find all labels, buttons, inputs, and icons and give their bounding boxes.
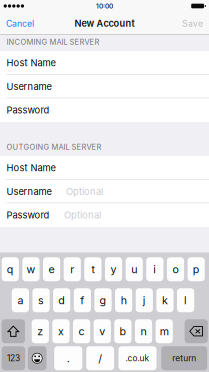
staticText: o <box>172 263 178 276</box>
staticText: g <box>99 294 106 307</box>
button[interactable]: x <box>52 319 69 343</box>
button[interactable]: Save <box>182 12 209 35</box>
button[interactable]: q <box>2 257 19 281</box>
button[interactable]: f <box>74 288 91 312</box>
staticText: a <box>17 294 23 307</box>
staticText: Password <box>6 209 49 221</box>
staticText: Optional <box>66 186 103 197</box>
button[interactable]: Host Name <box>0 51 209 75</box>
staticText: s <box>38 294 44 307</box>
button[interactable]: 123 <box>2 346 25 370</box>
button[interactable]: Delete <box>185 319 208 343</box>
button[interactable]: t <box>84 257 101 281</box>
button[interactable]: p <box>188 257 205 281</box>
button[interactable]: o <box>167 257 184 281</box>
staticText: u <box>131 263 137 276</box>
staticText: . <box>67 352 70 365</box>
staticText: OUTGOING MAIL SERVER <box>6 142 101 151</box>
button[interactable]: l <box>177 288 194 312</box>
button[interactable]: Shift <box>2 319 25 343</box>
button[interactable]: b <box>114 319 131 343</box>
staticText: q <box>7 263 14 276</box>
button[interactable]: g <box>94 288 112 312</box>
staticText: Host Name <box>6 57 55 68</box>
staticText: k <box>162 294 168 307</box>
staticText: Save <box>182 18 203 29</box>
staticText: 123 <box>7 353 20 363</box>
staticText: v <box>99 325 105 338</box>
button[interactable]: k <box>156 288 174 312</box>
staticText: / <box>98 352 102 365</box>
button[interactable]: w <box>22 257 39 281</box>
button[interactable]: Password <box>0 98 209 122</box>
button[interactable]: v <box>94 319 111 343</box>
button[interactable]: / <box>86 346 114 370</box>
button[interactable]: m <box>156 319 173 343</box>
button[interactable]: r <box>64 257 81 281</box>
button[interactable]: Cancel <box>0 12 34 35</box>
button[interactable]: Host Name <box>0 156 209 180</box>
staticText: z <box>37 325 43 338</box>
button[interactable]: Emoji <box>28 346 46 370</box>
staticText: Username <box>6 186 51 197</box>
button[interactable]: Username <box>0 180 209 203</box>
button[interactable]: . <box>54 346 82 370</box>
staticText: n <box>140 325 146 338</box>
staticText: c <box>79 325 85 338</box>
button[interactable]: e <box>43 257 60 281</box>
button[interactable]: j <box>136 288 153 312</box>
button[interactable]: Password <box>0 203 209 227</box>
staticText: p <box>193 263 200 276</box>
button[interactable]: z <box>32 319 49 343</box>
button[interactable]: y <box>105 257 122 281</box>
staticText: m <box>160 325 169 338</box>
staticText: Optional <box>64 209 101 221</box>
staticText: e <box>49 263 55 276</box>
staticText: Host Name <box>6 162 55 173</box>
button[interactable]: n <box>135 319 152 343</box>
staticText: INCOMING MAIL SERVER <box>6 37 99 46</box>
staticText: l <box>184 294 187 307</box>
staticText: x <box>58 325 64 338</box>
staticText: y <box>110 263 116 276</box>
button[interactable]: u <box>126 257 143 281</box>
staticText: t <box>91 263 94 276</box>
staticText: i <box>153 263 156 276</box>
button[interactable]: h <box>115 288 132 312</box>
staticText: New Account <box>74 18 134 29</box>
staticText: h <box>121 294 127 307</box>
staticText: Cancel <box>6 18 34 29</box>
staticText: 10:00 <box>96 2 113 10</box>
staticText: d <box>58 294 65 307</box>
staticText: Username <box>6 81 51 92</box>
staticText: return <box>172 353 196 363</box>
button[interactable]: Username <box>0 75 209 98</box>
button[interactable]: i <box>146 257 163 281</box>
staticText: j <box>143 294 146 307</box>
button[interactable]: a <box>12 288 29 312</box>
staticText: .co.uk <box>125 353 149 363</box>
button[interactable]: s <box>32 288 50 312</box>
staticText: w <box>26 263 35 276</box>
staticText: b <box>119 325 126 338</box>
button[interactable]: .co.uk <box>118 346 156 370</box>
button[interactable]: return <box>161 346 207 370</box>
button[interactable]: d <box>53 288 70 312</box>
button[interactable]: c <box>73 319 90 343</box>
staticText: r <box>70 263 74 276</box>
staticText: f <box>80 294 84 307</box>
staticText: Password <box>6 104 49 116</box>
